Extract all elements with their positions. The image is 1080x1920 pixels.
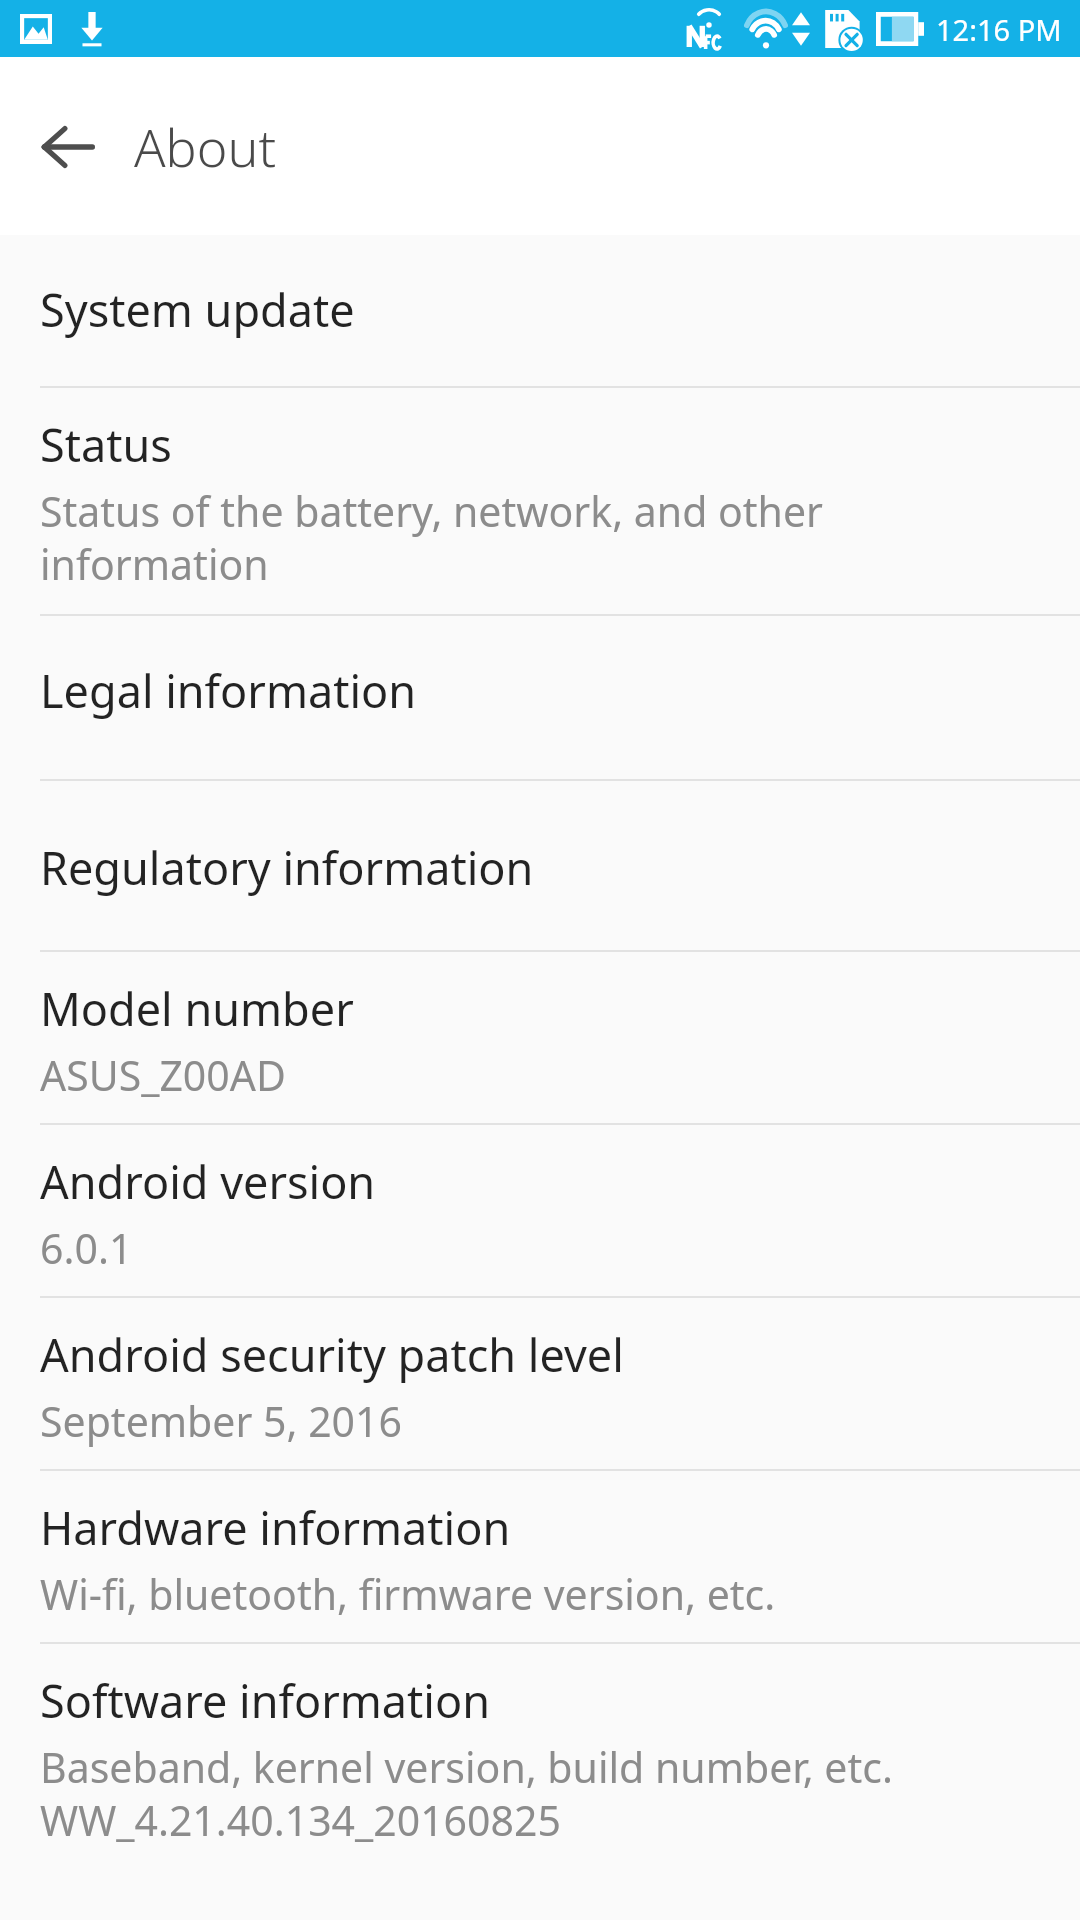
staticText: Legal information <box>40 660 417 721</box>
button[interactable]: Model number <box>0 952 1080 1123</box>
button[interactable]: Legal information <box>0 616 1080 779</box>
staticText: Status <box>40 414 172 475</box>
button[interactable]: Status <box>0 388 1080 614</box>
staticText: ASUS_Z00AD <box>40 1047 286 1103</box>
staticText: 6.0.1 <box>40 1220 133 1276</box>
staticText: Android version <box>40 1151 376 1212</box>
staticText: Model number <box>40 978 354 1039</box>
button[interactable]: Hardware information <box>0 1471 1080 1642</box>
staticText: About <box>134 111 277 182</box>
staticText: Baseband, kernel version, build number, … <box>40 1739 893 1848</box>
button[interactable]: Android security patch level <box>0 1298 1080 1469</box>
staticText: Hardware information <box>40 1497 511 1558</box>
button[interactable]: Back <box>34 114 100 180</box>
button[interactable]: Regulatory information <box>0 781 1080 950</box>
staticText: Software information <box>40 1670 490 1731</box>
staticText: Wi-fi, bluetooth, firmware version, etc. <box>40 1566 776 1622</box>
button[interactable]: Software information <box>0 1644 1080 1868</box>
staticText: Regulatory information <box>40 837 534 898</box>
staticText: System update <box>40 279 355 340</box>
staticText: Android security patch level <box>40 1324 624 1385</box>
staticText: September 5, 2016 <box>40 1393 402 1449</box>
staticText: Status of the battery, network, and othe… <box>40 483 824 592</box>
staticText: 12:16 PM <box>936 10 1062 49</box>
button[interactable]: System update <box>0 235 1080 386</box>
button[interactable]: Android version <box>0 1125 1080 1296</box>
